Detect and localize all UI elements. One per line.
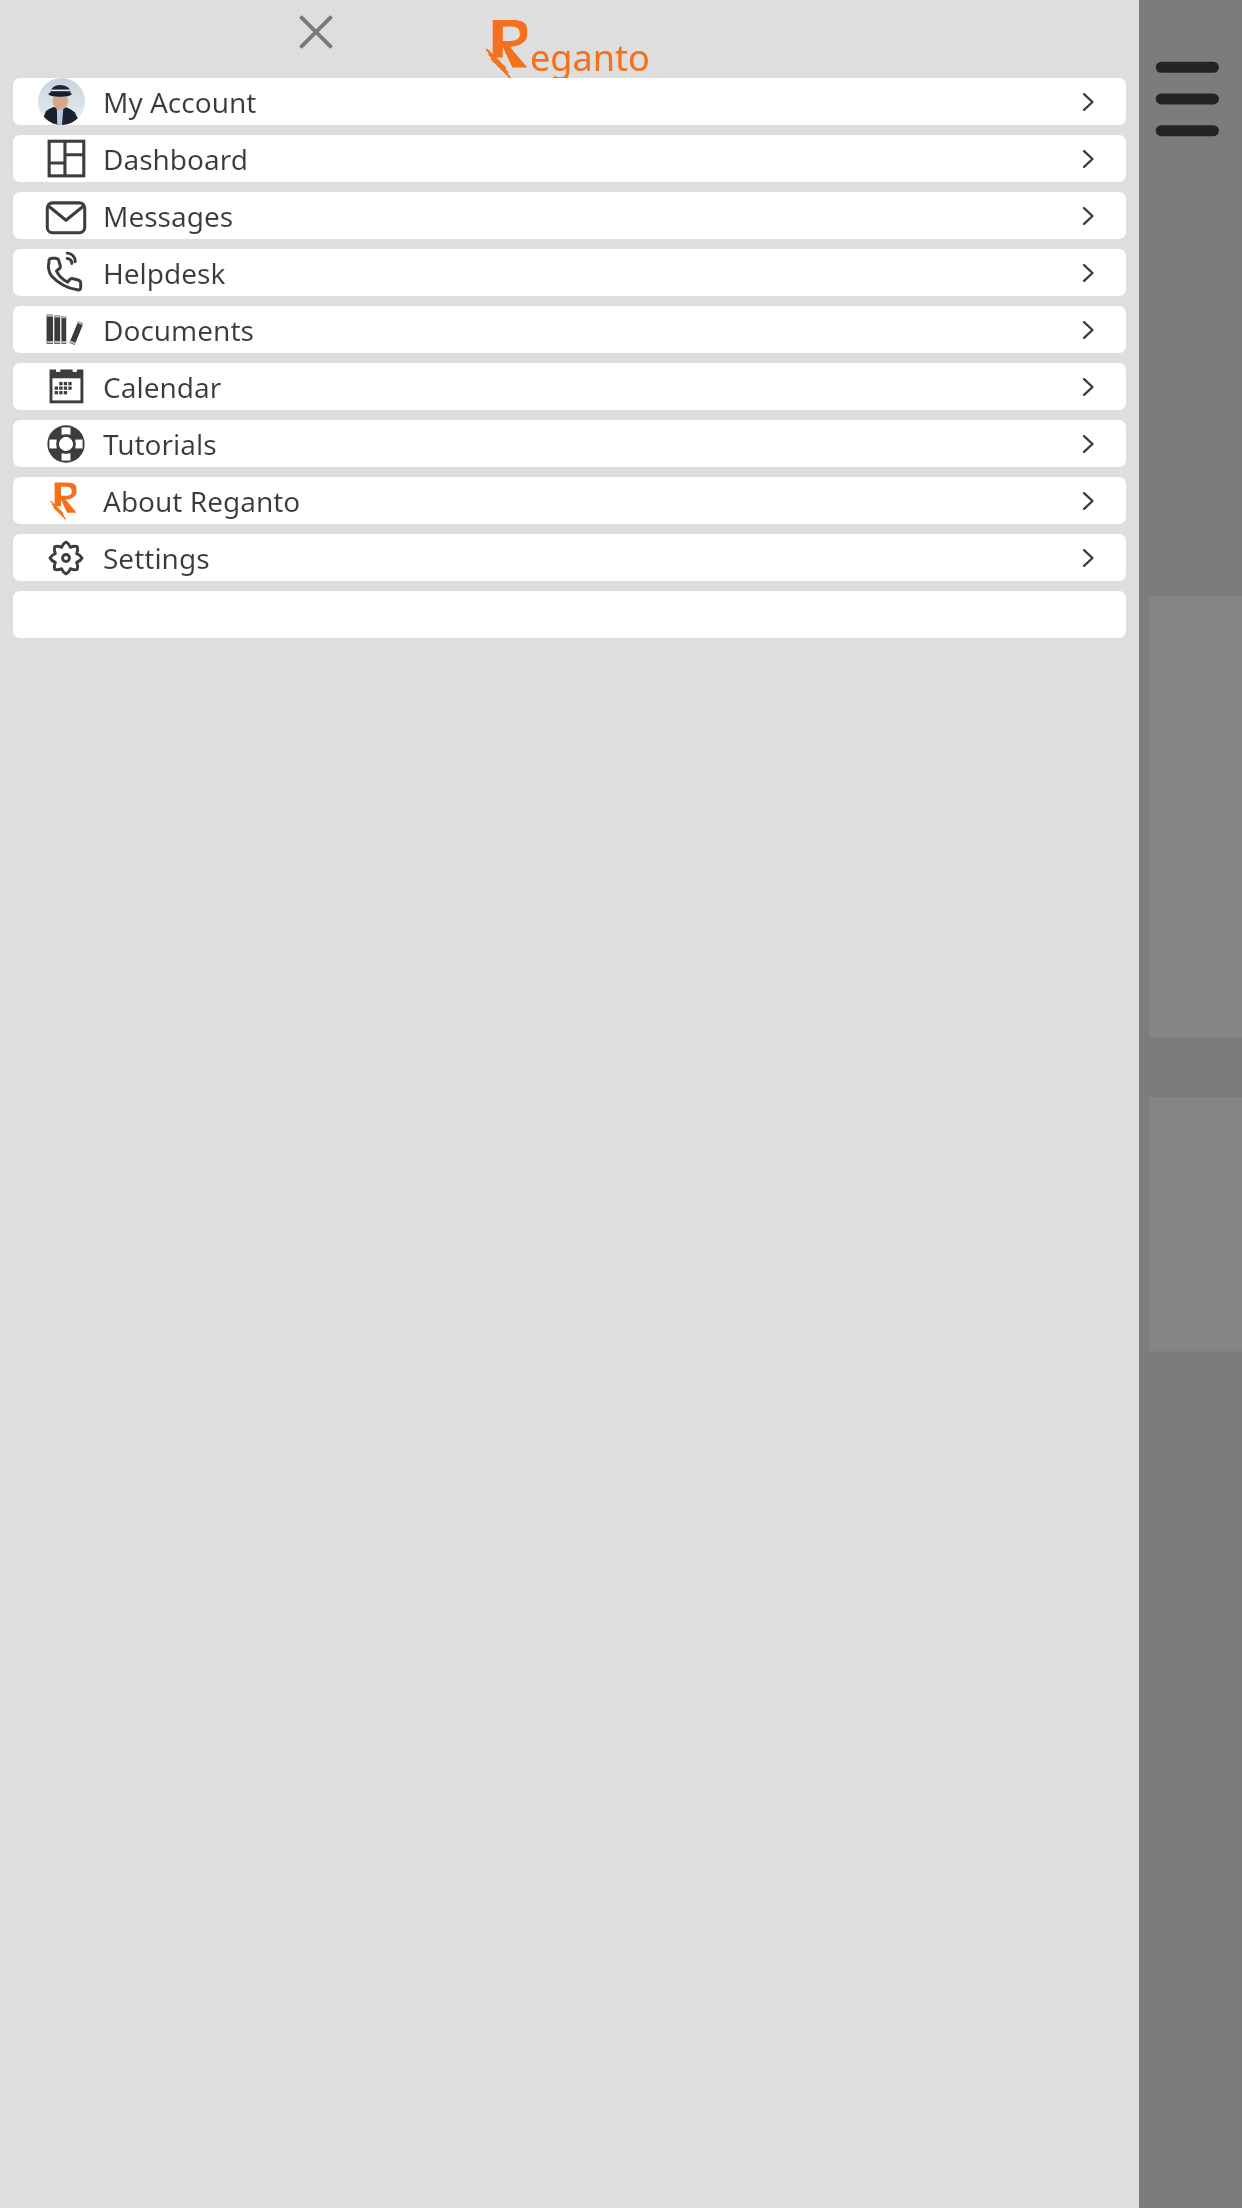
button[interactable]: Close menu — [288, 4, 344, 60]
button[interactable]: Tutorials — [13, 420, 1126, 467]
staticText: Tutorials — [103, 425, 1074, 463]
button[interactable]: My Account — [13, 78, 1126, 125]
staticText: Helpdesk — [103, 254, 1074, 292]
button[interactable]: About Reganto — [13, 477, 1126, 524]
staticText: Messages — [103, 197, 1074, 235]
button[interactable]: Calendar — [13, 363, 1126, 410]
staticText: eganto — [530, 33, 650, 82]
button[interactable]: Dashboard — [13, 135, 1126, 182]
staticText: Dashboard — [103, 140, 1074, 178]
staticText: Calendar — [103, 368, 1074, 406]
button[interactable]: Messages — [13, 192, 1126, 239]
staticText: Documents — [103, 311, 1074, 349]
button[interactable]: Documents — [13, 306, 1126, 353]
staticText: My Account — [103, 83, 1074, 121]
staticText: About Reganto — [103, 482, 1074, 520]
button[interactable]: Helpdesk — [13, 249, 1126, 296]
button[interactable]: Settings — [13, 534, 1126, 581]
staticText: Settings — [103, 539, 1074, 577]
